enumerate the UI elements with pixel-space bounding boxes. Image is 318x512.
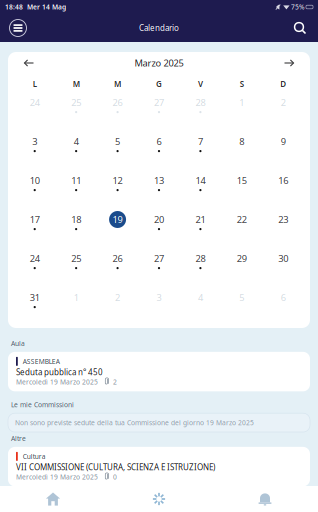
button[interactable]: Menu <box>3 14 33 42</box>
staticText: 6 <box>156 135 161 148</box>
staticText: 5 <box>115 135 120 148</box>
staticText: 5 <box>239 291 244 304</box>
staticText: 8 <box>239 135 244 148</box>
staticText: 25 <box>71 252 81 265</box>
button[interactable]: 26 <box>97 250 138 289</box>
staticText: 31 <box>30 291 40 304</box>
staticText: 12 <box>113 174 123 187</box>
staticText: M <box>114 79 121 89</box>
staticText: Non sono previste sedute della tua Commi… <box>15 418 254 427</box>
button[interactable]: 27 <box>138 94 180 133</box>
staticText: VII COMMISSIONE (CULTURA, SCIENZA E ISTR… <box>16 462 215 472</box>
button[interactable]: 9 <box>263 133 304 172</box>
staticText: 15 <box>237 174 247 187</box>
staticText: 13 <box>154 174 164 187</box>
button[interactable]: 21 <box>180 211 221 250</box>
button[interactable]: 20 <box>138 211 180 250</box>
button[interactable]: 14 <box>180 172 221 211</box>
button[interactable]: 23 <box>263 211 304 250</box>
staticText: 17 <box>30 213 40 226</box>
button[interactable]: 4 <box>55 133 97 172</box>
staticText: L <box>33 79 37 89</box>
button[interactable]: Home <box>0 486 106 512</box>
button[interactable]: 11 <box>55 172 97 211</box>
button[interactable]: 6 <box>138 133 180 172</box>
staticText: 75% <box>291 3 305 11</box>
button[interactable]: 5 <box>97 133 138 172</box>
button[interactable]: 31 <box>14 289 55 328</box>
staticText: 3 <box>156 291 161 304</box>
staticText: S <box>240 79 244 89</box>
staticText: 4 <box>198 291 203 304</box>
button[interactable]: 7 <box>180 133 221 172</box>
staticText: 23 <box>278 213 288 226</box>
button[interactable]: 28 <box>180 94 221 133</box>
button[interactable]: 3 <box>14 133 55 172</box>
button[interactable]: 19 <box>97 211 138 250</box>
staticText: 26 <box>113 252 123 265</box>
button[interactable]: 24 <box>14 94 55 133</box>
staticText: 22 <box>237 213 247 226</box>
staticText: 7 <box>198 135 203 148</box>
staticText: 27 <box>154 252 164 265</box>
button[interactable]: Notifiche <box>212 486 318 512</box>
staticText: M <box>73 79 80 89</box>
staticText: Le mie Commissioni <box>11 400 74 409</box>
staticText: 1 <box>74 291 79 304</box>
button[interactable]: 10 <box>14 172 55 211</box>
staticText: 4 <box>74 135 79 148</box>
staticText: 2 <box>115 291 120 304</box>
button[interactable]: 22 <box>221 211 262 250</box>
staticText: ASSEMBLEA <box>23 357 60 366</box>
button[interactable]: 18 <box>55 211 97 250</box>
button[interactable]: 12 <box>97 172 138 211</box>
staticText: Mercoledì 19 Marzo 2025 <box>16 377 98 386</box>
staticText: 6 <box>281 291 286 304</box>
button[interactable]: Mese precedente <box>18 52 40 74</box>
staticText: 29 <box>237 252 247 265</box>
staticText: Altre <box>11 434 26 443</box>
staticText: 11 <box>71 174 81 187</box>
button[interactable]: Cerca <box>285 14 315 42</box>
staticText: 16 <box>278 174 288 187</box>
staticText: 28 <box>195 252 205 265</box>
button[interactable]: 30 <box>263 250 304 289</box>
staticText: Marzo 2025 <box>134 57 183 69</box>
button[interactable]: 28 <box>180 250 221 289</box>
button[interactable]: 15 <box>221 172 262 211</box>
button[interactable]: Cultura <box>8 447 310 486</box>
button[interactable]: 8 <box>221 133 262 172</box>
staticText: Cultura <box>23 452 46 461</box>
staticText: 20 <box>154 213 164 226</box>
button[interactable]: 29 <box>221 250 262 289</box>
staticText: V <box>198 79 203 89</box>
button[interactable]: Aggiornamenti <box>106 486 212 512</box>
button[interactable]: 16 <box>263 172 304 211</box>
staticText: 3 <box>32 135 37 148</box>
staticText: Mer 14 Mag <box>23 3 66 11</box>
button[interactable]: 25 <box>55 94 97 133</box>
staticText: Mercoledì 19 Marzo 2025 <box>16 472 98 481</box>
button[interactable]: Mese successivo <box>278 52 300 74</box>
staticText: G <box>156 79 162 89</box>
staticText: 24 <box>30 252 40 265</box>
staticText: 10 <box>30 174 40 187</box>
button[interactable]: 26 <box>97 94 138 133</box>
button[interactable]: ASSEMBLEA <box>8 352 310 391</box>
button[interactable]: 27 <box>138 250 180 289</box>
button[interactable]: 17 <box>14 211 55 250</box>
button[interactable]: 24 <box>14 250 55 289</box>
button[interactable]: 25 <box>55 250 97 289</box>
staticText: 18 <box>71 213 81 226</box>
staticText: Calendario <box>139 23 179 33</box>
button[interactable]: 13 <box>138 172 180 211</box>
staticText: 18:48 <box>5 3 23 11</box>
